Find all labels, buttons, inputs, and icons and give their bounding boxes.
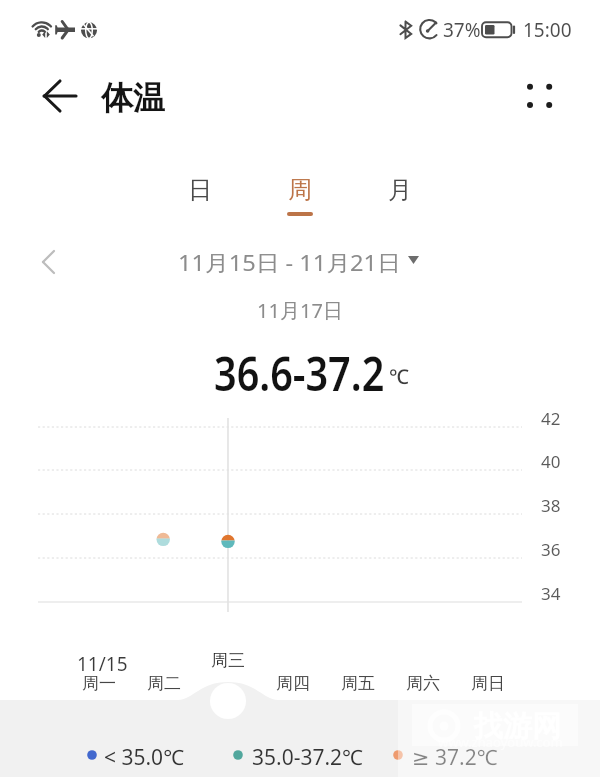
button[interactable]: 周六 bbox=[406, 673, 440, 694]
button[interactable]: Previous week bbox=[30, 243, 68, 281]
button[interactable]: Back bbox=[34, 70, 86, 122]
button[interactable]: 周二 bbox=[147, 673, 181, 694]
staticText: 周 bbox=[288, 175, 312, 205]
staticText: 15:00 bbox=[523, 17, 572, 43]
staticText: 11月15日 - 11月21日 bbox=[178, 247, 402, 277]
button[interactable]: < 35.0℃ bbox=[80, 742, 207, 770]
staticText: 日 bbox=[188, 175, 212, 205]
staticText: ℃ bbox=[389, 363, 409, 390]
button[interactable]: 周三 bbox=[211, 650, 245, 671]
staticText: 体温 bbox=[101, 78, 165, 118]
staticText: < 35.0℃ bbox=[104, 743, 185, 771]
staticText: www.zhaoyouw.com bbox=[438, 733, 563, 751]
button[interactable]: More options bbox=[514, 73, 560, 119]
staticText: ≥ 37.2℃ bbox=[412, 743, 498, 771]
button[interactable]: 周 bbox=[268, 168, 332, 224]
staticText: 38 bbox=[541, 494, 561, 517]
button[interactable]: 周五 bbox=[341, 673, 375, 694]
staticText: 34 bbox=[541, 582, 561, 605]
button[interactable]: 11月15日 - 11月21日 bbox=[170, 242, 430, 282]
staticText: 36 bbox=[541, 538, 561, 561]
button[interactable]: 周四 bbox=[276, 673, 310, 694]
button[interactable]: 日 bbox=[168, 168, 232, 224]
button[interactable]: ≥ 37.2℃ bbox=[386, 742, 513, 770]
staticText: 11月17日 bbox=[0, 297, 600, 324]
button[interactable]: 月 bbox=[368, 168, 432, 224]
button[interactable]: 周一 bbox=[82, 673, 116, 694]
staticText: 35.0-37.2℃ bbox=[252, 743, 363, 771]
staticText: 11/15 bbox=[77, 651, 128, 677]
staticText: 40 bbox=[541, 450, 561, 473]
staticText: 37% bbox=[443, 17, 481, 43]
button[interactable]: 35.0-37.2℃ bbox=[226, 742, 392, 770]
staticText: 月 bbox=[388, 175, 412, 205]
staticText: 42 bbox=[541, 407, 561, 430]
staticText: 36.6-37.2 bbox=[214, 342, 384, 405]
button[interactable]: 周日 bbox=[471, 673, 505, 694]
